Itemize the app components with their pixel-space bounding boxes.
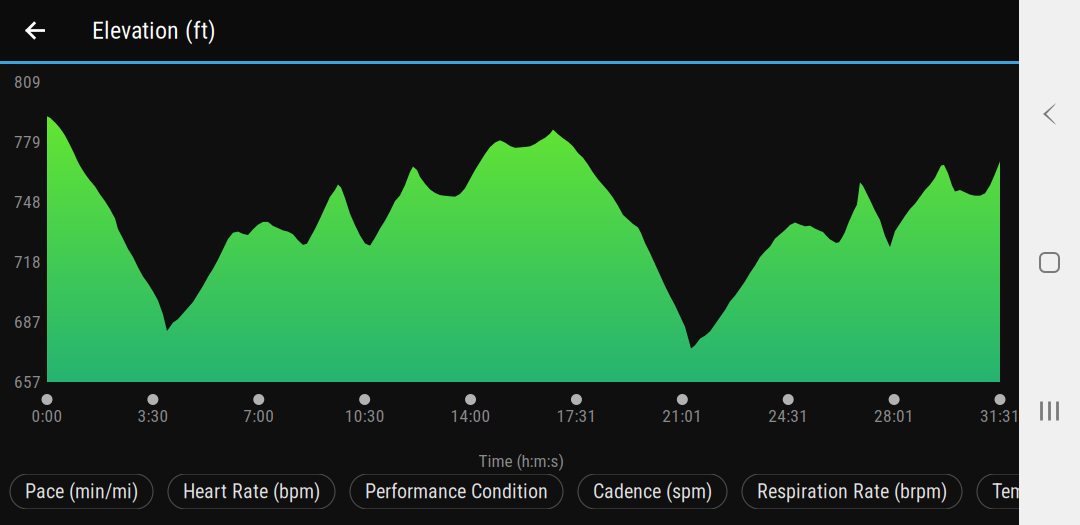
staticText: Heart Rate (bpm): [183, 480, 320, 503]
staticText: Performance Condition: [365, 480, 548, 503]
staticText: 28:01: [874, 406, 914, 426]
staticText: 24:31: [768, 406, 808, 426]
staticText: 17:31: [556, 406, 596, 426]
staticText: 779: [14, 132, 41, 152]
staticText: Temperature: [992, 480, 1080, 503]
button[interactable]: Back: [0, 0, 70, 61]
staticText: 21:01: [662, 406, 702, 426]
staticText: 687: [14, 312, 41, 332]
staticText: 809: [14, 72, 41, 92]
button[interactable]: Respiration Rate (brpm): [742, 474, 962, 509]
staticText: 657: [14, 372, 41, 392]
staticText: Elevation (ft): [92, 16, 216, 44]
staticText: 7:00: [243, 406, 274, 426]
staticText: Cadence (spm): [593, 480, 712, 503]
button[interactable]: Heart Rate (bpm): [168, 474, 335, 509]
button[interactable]: Performance Condition: [350, 474, 563, 509]
staticText: Respiration Rate (brpm): [757, 480, 947, 503]
staticText: 748: [14, 192, 41, 212]
staticText: Pace (min/mi): [25, 480, 138, 503]
button[interactable]: Back: [1019, 78, 1080, 150]
staticText: 0:00: [31, 406, 62, 426]
staticText: 718: [14, 252, 41, 272]
button[interactable]: Cadence (spm): [578, 474, 727, 509]
staticText: Time (h:m:s): [478, 451, 564, 471]
staticText: 31:31: [980, 406, 1020, 426]
staticText: 3:30: [137, 406, 168, 426]
button[interactable]: Home: [1019, 226, 1080, 298]
button[interactable]: Temperature: [977, 474, 1080, 509]
staticText: 14:00: [451, 406, 491, 426]
staticText: 10:30: [345, 406, 385, 426]
button[interactable]: Recent apps: [1019, 375, 1080, 447]
button[interactable]: Pace (min/mi): [10, 474, 153, 509]
